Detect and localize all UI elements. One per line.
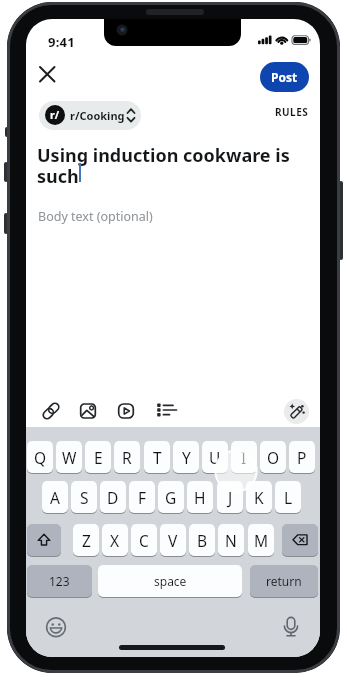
button[interactable]: T xyxy=(144,441,170,473)
staticText: N xyxy=(225,530,237,551)
button[interactable]: r/ xyxy=(39,101,141,130)
staticText: X xyxy=(110,530,120,551)
staticText: W xyxy=(62,447,77,468)
staticText: 123 xyxy=(49,573,70,589)
button[interactable]: W xyxy=(56,441,82,473)
staticText: V xyxy=(168,530,178,551)
button[interactable]: B xyxy=(189,524,215,556)
button[interactable]: return xyxy=(250,565,318,597)
button[interactable]: U xyxy=(202,441,228,473)
button[interactable]: V xyxy=(160,524,186,556)
button[interactable]: E xyxy=(85,441,111,473)
staticText: return xyxy=(266,573,302,589)
staticText: A xyxy=(50,487,60,508)
staticText: J xyxy=(228,487,233,508)
button[interactable]: H xyxy=(187,481,213,513)
staticText: space xyxy=(154,573,187,589)
staticText: O xyxy=(267,447,280,468)
staticText: D xyxy=(107,487,119,508)
button[interactable]: X xyxy=(102,524,128,556)
button[interactable]: S xyxy=(71,481,97,513)
staticText: Z xyxy=(82,530,91,551)
button[interactable] xyxy=(284,399,309,424)
staticText: RULES xyxy=(275,105,309,119)
staticText: 9:41 xyxy=(48,33,75,51)
button[interactable]: R xyxy=(114,441,140,473)
button[interactable]: F xyxy=(129,481,155,513)
button[interactable] xyxy=(282,524,318,556)
button[interactable]: K xyxy=(246,481,272,513)
button[interactable]: Q xyxy=(27,441,53,473)
button[interactable]: A xyxy=(42,481,68,513)
staticText: U xyxy=(209,447,221,468)
button[interactable]: Y xyxy=(173,441,199,473)
staticText: P xyxy=(297,447,307,468)
button[interactable]: RULES xyxy=(270,101,314,123)
staticText: Post xyxy=(271,69,298,85)
button[interactable]: D xyxy=(100,481,126,513)
staticText: M xyxy=(254,530,269,551)
button[interactable] xyxy=(42,613,70,641)
staticText: Y xyxy=(182,447,191,468)
staticText: T xyxy=(153,447,162,468)
staticText: F xyxy=(138,487,147,508)
button[interactable] xyxy=(37,397,65,425)
button[interactable] xyxy=(150,397,178,425)
button[interactable]: C xyxy=(131,524,157,556)
button[interactable]: N xyxy=(218,524,244,556)
button[interactable]: J xyxy=(217,481,243,513)
staticText: Q xyxy=(34,447,47,468)
button[interactable]: M xyxy=(248,524,274,556)
button[interactable]: G xyxy=(158,481,184,513)
button[interactable]: 123 xyxy=(27,565,92,597)
button[interactable] xyxy=(27,524,61,556)
staticText: Using induction cookware is such xyxy=(37,143,290,189)
button[interactable]: O xyxy=(260,441,286,473)
button[interactable] xyxy=(34,60,62,88)
staticText: r/ xyxy=(50,108,60,122)
button[interactable]: Z xyxy=(73,524,99,556)
button[interactable] xyxy=(74,397,102,425)
staticText: K xyxy=(254,487,264,508)
button[interactable]: I xyxy=(231,441,257,473)
staticText: L xyxy=(284,487,293,508)
staticText: r/Cooking xyxy=(70,108,125,123)
button[interactable] xyxy=(112,397,140,425)
staticText: Body text (optional) xyxy=(38,208,153,225)
staticText: B xyxy=(197,530,208,551)
button[interactable]: Post xyxy=(260,62,309,92)
button[interactable] xyxy=(277,613,305,641)
staticText: S xyxy=(80,487,89,508)
staticText: C xyxy=(139,530,149,551)
staticText: H xyxy=(194,487,206,508)
button[interactable]: L xyxy=(275,481,301,513)
staticText: I xyxy=(241,447,247,468)
button[interactable]: space xyxy=(98,565,242,597)
staticText: E xyxy=(94,447,103,468)
button[interactable]: P xyxy=(289,441,315,473)
staticText: G xyxy=(165,487,177,508)
staticText: R xyxy=(122,447,132,468)
